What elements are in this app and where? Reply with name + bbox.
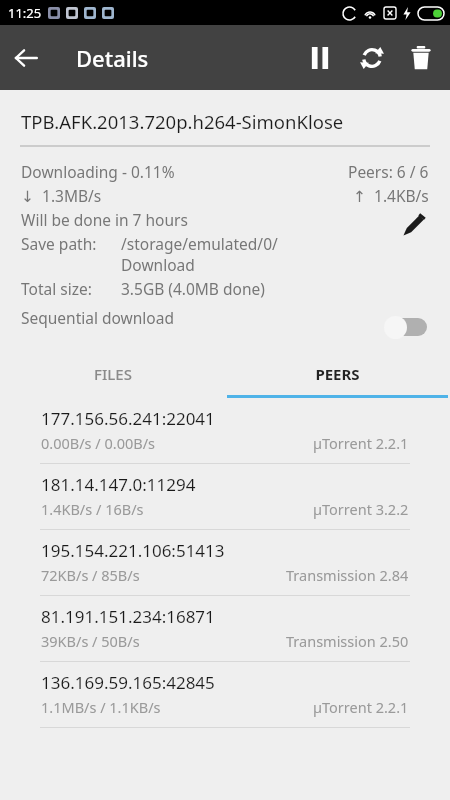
staticText: 72KB/s / 85B/s [41,565,140,585]
button[interactable]: PEERS [225,353,450,395]
staticText: Peers: 6 / 6 [348,161,429,182]
staticText: TPB.AFK.2013.720p.h264-SimonKlose [21,109,344,134]
staticText: 81.191.151.234:16871 [41,605,215,628]
button[interactable]: FILES [0,353,225,395]
button[interactable]: Back [0,32,52,84]
staticText: 11:25 [8,4,42,22]
button[interactable]: 136.169.59.165:42845 [0,662,450,728]
staticText: 0.00B/s / 0.00B/s [41,433,155,453]
button[interactable]: 177.156.56.241:22041 [0,398,450,464]
button[interactable]: Edit save path [392,203,436,247]
staticText: µTorrent 3.2.2 [313,499,409,519]
staticText: Downloading - 0.11% [21,161,175,182]
button[interactable]: 81.191.151.234:16871 [0,596,450,662]
staticText: 3.5GB (4.0MB done) [121,278,265,299]
button[interactable]: 195.154.221.106:51413 [0,530,450,596]
staticText: 181.14.147.0:11294 [41,473,196,496]
staticText: 1.4KB/s / 16B/s [41,499,144,519]
staticText: ↓ 1.3MB/s [21,185,102,206]
staticText: 1.1MB/s / 1.1KB/s [41,697,161,717]
staticText: 195.154.221.106:51413 [41,539,225,562]
staticText: µTorrent 2.2.1 [313,697,409,717]
staticText: Save path: [21,233,97,254]
staticText: 39KB/s / 50B/s [41,631,140,651]
button[interactable]: Pause [294,32,346,84]
staticText: Details [76,43,149,73]
button[interactable]: 181.14.147.0:11294 [0,464,450,530]
staticText: PEERS [315,364,360,384]
button[interactable]: Sequential download toggle [378,309,438,345]
button[interactable]: Delete [398,32,444,84]
staticText: µTorrent 2.2.1 [313,433,409,453]
staticText: ↑ 1.4KB/s [353,185,429,206]
staticText: FILES [94,364,132,384]
staticText: Transmission 2.84 [286,565,409,585]
button[interactable]: Refresh [346,32,398,84]
staticText: Total size: [21,278,92,299]
staticText: 177.156.56.241:22041 [41,407,215,430]
staticText: Sequential download [21,307,174,328]
staticText: Transmission 2.50 [286,631,409,651]
staticText: 136.169.59.165:42845 [41,671,215,694]
staticText: /storage/emulated/0/ [121,233,278,254]
staticText: Will be done in 7 hours [21,209,188,230]
staticText: Download [121,254,195,275]
